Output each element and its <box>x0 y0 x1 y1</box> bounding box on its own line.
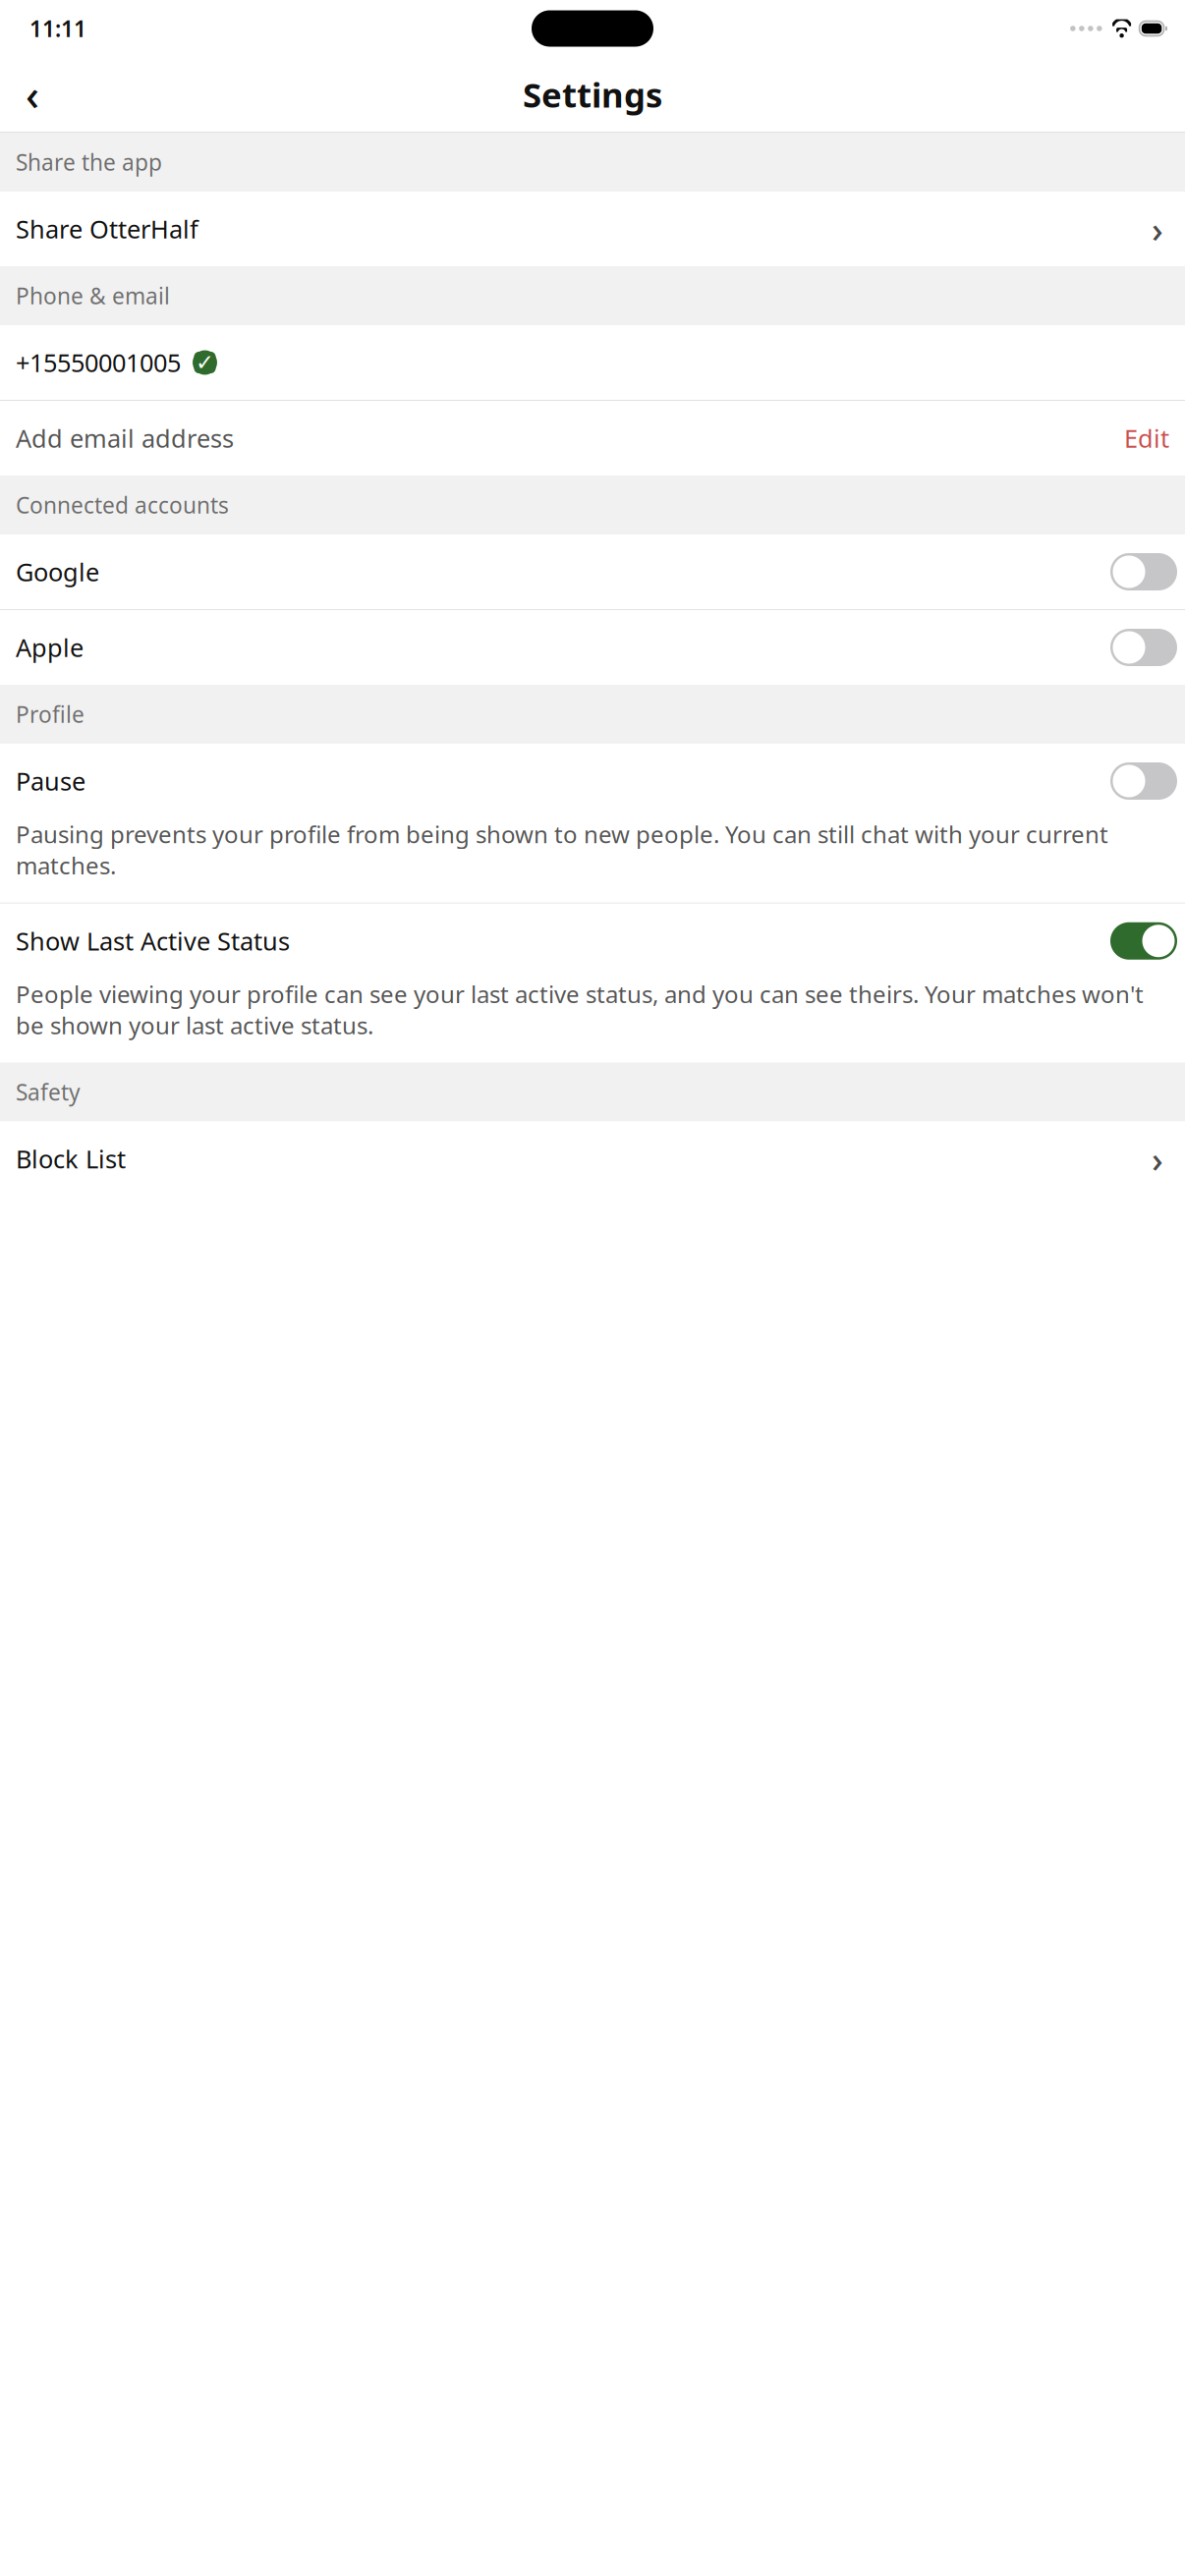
staticText: Google <box>16 555 99 588</box>
button[interactable]: Add email address <box>0 401 1185 476</box>
staticText: ‹ <box>26 67 39 122</box>
staticText: ✓ <box>196 350 214 375</box>
staticText: Pause <box>16 765 85 798</box>
staticText: Safety <box>16 1077 81 1107</box>
staticText: Phone & email <box>16 281 170 310</box>
staticText: › <box>1152 205 1163 252</box>
button[interactable]: Apple <box>0 610 1185 685</box>
staticText: Share the app <box>16 147 162 177</box>
staticText: Show Last Active Status <box>16 924 290 957</box>
button[interactable]: +15550001005 <box>0 325 1185 400</box>
staticText: Profile <box>16 699 85 729</box>
staticText: Add email address <box>16 422 234 455</box>
staticText: Connected accounts <box>16 490 229 520</box>
button[interactable]: Share OtterHalf <box>0 192 1185 266</box>
staticText: Apple <box>16 631 84 664</box>
staticText: Pausing prevents your profile from being… <box>16 818 1108 881</box>
staticText: › <box>1152 1135 1163 1182</box>
button[interactable]: Pause <box>0 744 1185 903</box>
button[interactable]: Back <box>4 66 61 123</box>
staticText: Edit <box>1124 422 1169 455</box>
button[interactable]: Block List <box>0 1121 1185 1196</box>
staticText: 11:11 <box>29 14 86 43</box>
staticText: Settings <box>523 72 662 117</box>
staticText: People viewing your profile can see your… <box>16 978 1144 1041</box>
button[interactable]: Show Last Active Status <box>0 904 1185 1062</box>
staticText: Share OtterHalf <box>16 212 198 245</box>
staticText: +15550001005 <box>16 346 181 379</box>
staticText: Block List <box>16 1142 126 1175</box>
button[interactable]: Google <box>0 534 1185 609</box>
